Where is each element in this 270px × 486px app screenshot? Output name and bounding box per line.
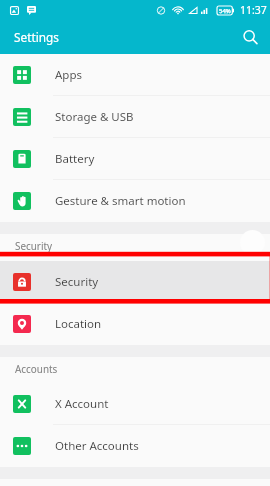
button[interactable]: Gesture & smart motion: [0, 180, 270, 222]
staticText: Apps: [55, 67, 83, 83]
staticText: Battery: [55, 151, 95, 167]
button[interactable]: Security: [0, 261, 270, 303]
button[interactable]: Location: [0, 303, 270, 345]
staticText: Location: [55, 316, 102, 332]
staticText: Accounts: [15, 362, 58, 375]
staticText: Settings: [14, 29, 59, 45]
staticText: 11:37: [240, 3, 267, 17]
staticText: Other Accounts: [55, 438, 139, 454]
staticText: Security: [55, 274, 99, 290]
button[interactable]: Apps: [0, 54, 270, 96]
button[interactable]: Battery: [0, 138, 270, 180]
staticText: Gesture & smart motion: [55, 193, 186, 209]
button[interactable]: Storage & USB: [0, 96, 270, 138]
staticText: Storage & USB: [55, 109, 134, 125]
staticText: X Account: [55, 396, 109, 412]
staticText: Security: [15, 239, 53, 252]
button[interactable]: X Account: [0, 383, 270, 425]
staticText: 54%: [219, 7, 231, 15]
button[interactable]: Search: [236, 23, 264, 51]
button[interactable]: Other Accounts: [0, 425, 270, 467]
